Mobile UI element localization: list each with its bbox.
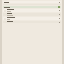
button[interactable] bbox=[3, 13, 61, 16]
button[interactable] bbox=[3, 21, 61, 23]
button[interactable]: More options bbox=[3, 1, 61, 3]
button[interactable] bbox=[3, 17, 61, 20]
button[interactable] bbox=[3, 9, 61, 12]
button[interactable]: Status bbox=[3, 6, 61, 8]
button[interactable]: Status bbox=[58, 6, 60, 8]
